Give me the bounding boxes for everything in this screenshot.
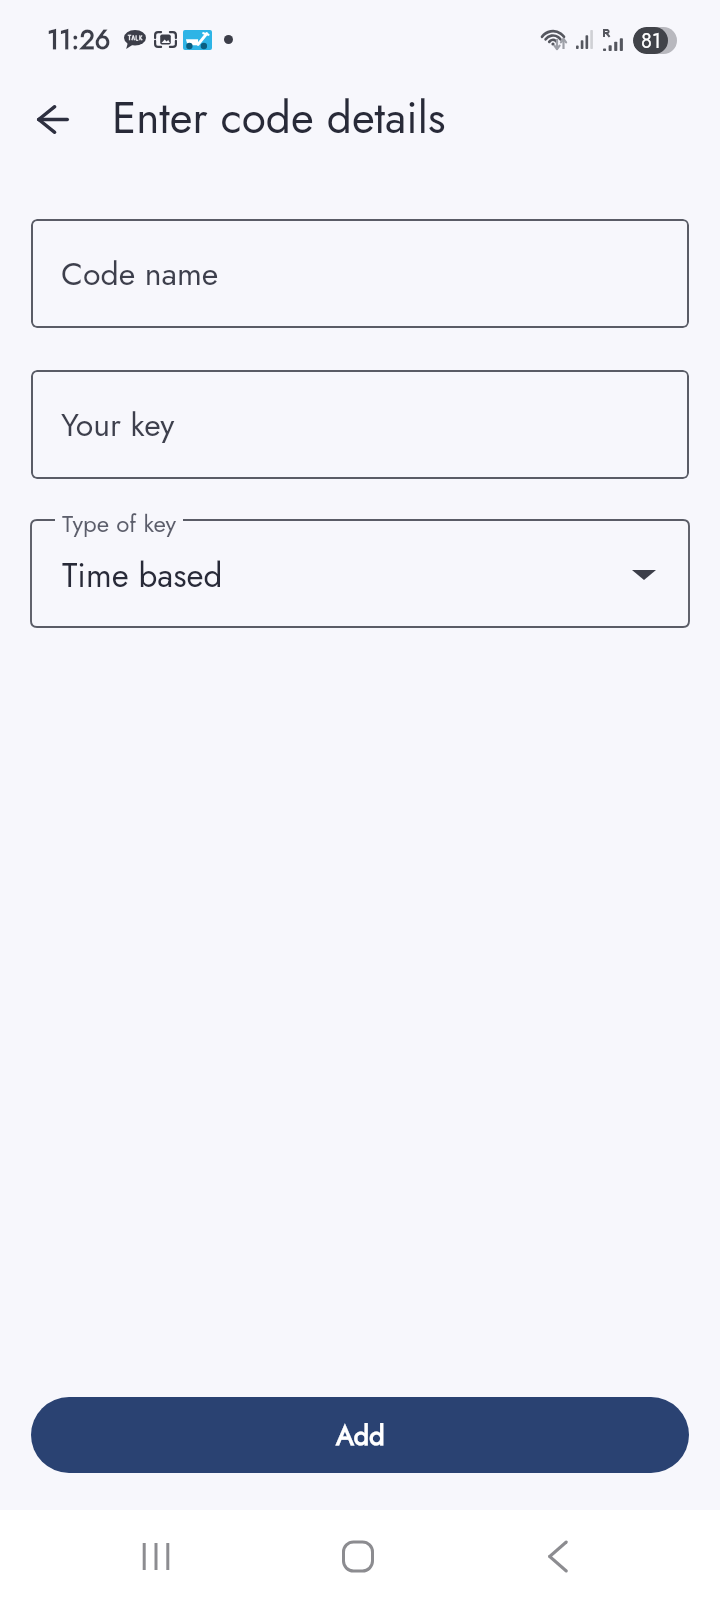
staticText: Time based <box>62 552 223 600</box>
button[interactable]: Code name <box>31 219 689 328</box>
button[interactable]: Home <box>318 1510 398 1600</box>
staticText: 81 <box>641 27 661 54</box>
staticText: Type of key <box>62 506 177 541</box>
staticText: Your key <box>61 402 175 448</box>
button[interactable]: Your key <box>31 370 689 479</box>
button[interactable]: Add <box>31 1397 689 1473</box>
staticText: Add <box>336 1416 385 1455</box>
button[interactable]: Recents <box>116 1510 196 1600</box>
button[interactable]: Back <box>22 95 78 151</box>
other: Expand <box>632 570 656 584</box>
staticText: Enter code details <box>112 86 446 150</box>
staticText: Code name <box>61 251 219 297</box>
staticText: 11:26 <box>47 20 111 59</box>
button[interactable]: Back <box>519 1510 599 1600</box>
